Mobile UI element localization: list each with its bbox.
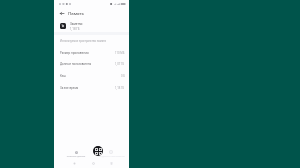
staticText: Данные пользователя <box>60 62 92 66</box>
staticText: Размер приложения <box>60 51 89 55</box>
staticText: 0 Б <box>121 74 125 78</box>
staticText: Кеш <box>60 74 66 78</box>
button[interactable]: Часы <box>62 151 90 158</box>
staticText: 1,07 ГБ <box>115 62 125 66</box>
button[interactable]: За все время <box>54 82 129 94</box>
staticText: Память <box>68 10 84 16</box>
button[interactable]: Заметки <box>54 21 129 31</box>
button[interactable]: Недавние приложения <box>107 159 115 167</box>
staticText: Заметки <box>70 22 83 26</box>
button[interactable]: Следующее приложение <box>97 150 125 158</box>
staticText: 1,18 ГБ <box>115 86 125 90</box>
staticText: Используемое пространство памяти <box>60 39 107 43</box>
button[interactable]: Все приложения <box>93 146 103 156</box>
button[interactable]: Назад <box>70 159 78 167</box>
button[interactable]: Главный экран <box>89 159 97 167</box>
staticText: Сведения о приложении <box>98 155 125 158</box>
button[interactable]: Данные пользователя <box>54 58 129 70</box>
staticText: 1,18 ГБ <box>70 27 80 31</box>
button[interactable]: Назад <box>57 9 66 18</box>
staticText: За все время <box>60 86 79 90</box>
staticText: Очистить данные приложения <box>62 155 90 158</box>
button[interactable]: Размер приложения <box>54 47 129 59</box>
button[interactable]: Кеш <box>54 70 129 82</box>
staticText: 110 МБ <box>115 51 125 55</box>
